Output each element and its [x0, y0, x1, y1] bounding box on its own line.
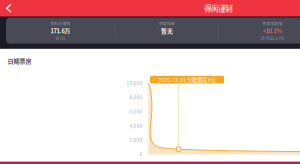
- staticText: 4,000: [129, 122, 142, 129]
- staticText: 近7日: [55, 36, 65, 41]
- staticText: 暂无: [161, 26, 173, 35]
- staticText: 热度涨跌幅: [262, 21, 282, 26]
- staticText: 171.6万: [50, 26, 70, 35]
- button[interactable]: Back: [0, 0, 18, 16]
- staticText: 0: [139, 151, 142, 157]
- staticText: 10,000: [126, 80, 142, 86]
- staticText: 6,000: [129, 108, 142, 115]
- staticText: 近7日较上7日: [260, 36, 284, 41]
- staticText: 2025-12-31 分账票房 0元: [158, 76, 216, 83]
- staticText: 日期票房: [7, 56, 31, 65]
- staticText: +10.1%: [262, 26, 282, 35]
- staticText: 物料总播放: [50, 21, 70, 26]
- staticText: 热度指数: [159, 21, 175, 26]
- staticText: 8,000: [129, 94, 142, 101]
- staticText: 得闲谨制: [204, 3, 232, 14]
- staticText: 2,000: [129, 136, 142, 143]
